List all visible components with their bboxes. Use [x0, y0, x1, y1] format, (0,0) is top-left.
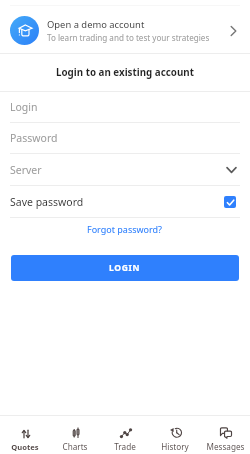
button[interactable]: Open a demo account: [0, 6, 250, 53]
button[interactable]: Charts: [50, 416, 100, 454]
staticText: To learn trading and to test your strate…: [47, 32, 210, 43]
button[interactable]: Trade: [100, 416, 150, 454]
staticText: Forgot password?: [87, 223, 163, 235]
staticText: Password: [10, 131, 236, 145]
button[interactable]: Server: [0, 154, 250, 186]
staticText: Login to an existing account: [56, 66, 194, 79]
button[interactable]: History: [150, 416, 200, 454]
staticText: Login: [10, 100, 236, 114]
button[interactable]: Save password: [0, 186, 250, 218]
button[interactable]: Quotes: [0, 416, 50, 454]
other: History: [170, 427, 182, 438]
other: Quotes: [21, 429, 31, 439]
staticText: LOGIN: [109, 262, 141, 274]
other: Charts: [71, 427, 81, 438]
staticText: Trade: [114, 441, 136, 452]
button[interactable]: Login: [0, 92, 250, 123]
staticText: Server: [10, 163, 227, 177]
button[interactable]: LOGIN: [11, 255, 239, 281]
button[interactable]: Messages: [200, 416, 250, 454]
staticText: Save password: [10, 195, 224, 209]
button[interactable]: Password: [0, 123, 250, 154]
other: Open a demo account: [10, 16, 39, 45]
staticText: History: [161, 441, 189, 452]
staticText: Messages: [206, 441, 245, 452]
other: Trade: [120, 428, 132, 438]
staticText: Charts: [62, 441, 88, 452]
staticText: Open a demo account: [47, 18, 145, 31]
button[interactable]: Forgot password?: [0, 218, 250, 239]
staticText: Quotes: [11, 442, 39, 452]
other: Messages: [220, 427, 232, 438]
